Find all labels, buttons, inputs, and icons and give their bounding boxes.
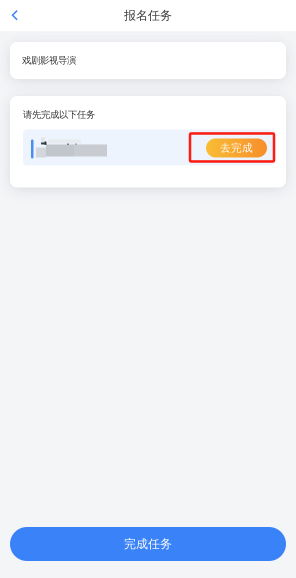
staticText: 去完成: [220, 141, 253, 154]
staticText: 完成任务: [124, 537, 172, 551]
button[interactable]: 去完成: [206, 138, 267, 157]
staticText: 戏剧影视导演: [22, 55, 76, 66]
button[interactable]: Back: [0, 3, 30, 27]
button[interactable]: 完成任务: [10, 527, 286, 561]
staticText: 报名任务: [124, 8, 172, 23]
staticText: 请先完成以下任务: [23, 109, 95, 120]
